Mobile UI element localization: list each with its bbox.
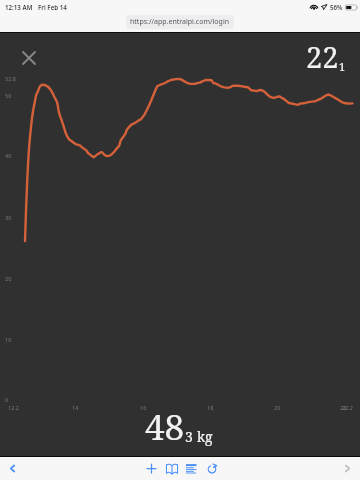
staticText: 18 bbox=[207, 404, 214, 411]
staticText: https://app.entralpi.com/login bbox=[130, 17, 230, 27]
staticText: 3 bbox=[185, 427, 193, 446]
staticText: 14 bbox=[72, 404, 79, 411]
staticText: 22 bbox=[340, 404, 347, 411]
button[interactable]: https://app.entralpi.com/login bbox=[126, 15, 234, 29]
staticText: 1 bbox=[339, 59, 346, 74]
button[interactable]: Close bbox=[18, 47, 40, 69]
staticText: 12.2 bbox=[8, 404, 19, 411]
button[interactable]: Forward bbox=[334, 457, 360, 480]
staticText: 16 bbox=[140, 404, 147, 411]
staticText: 52.8 bbox=[5, 75, 16, 82]
staticText: 50 bbox=[5, 92, 12, 99]
button[interactable]: New tab bbox=[144, 461, 159, 476]
staticText: 10 bbox=[5, 336, 12, 343]
staticText: 56% bbox=[330, 3, 343, 11]
button[interactable]: Back bbox=[0, 457, 24, 480]
staticText: 48 bbox=[145, 403, 185, 451]
staticText: 20 bbox=[274, 404, 281, 411]
staticText: kg bbox=[197, 427, 213, 446]
staticText: 12:13 AM bbox=[5, 3, 33, 11]
staticText: 40 bbox=[5, 152, 12, 159]
button[interactable]: Reload bbox=[204, 461, 219, 476]
staticText: 22.2 bbox=[342, 404, 353, 411]
button[interactable]: Bookmarks bbox=[164, 461, 179, 476]
staticText: Fri Feb 14 bbox=[38, 3, 67, 11]
staticText: 22 bbox=[306, 37, 339, 76]
staticText: 20 bbox=[5, 275, 12, 282]
staticText: 30 bbox=[5, 214, 12, 221]
button[interactable]: Reader view bbox=[184, 461, 199, 476]
staticText: 0 bbox=[5, 396, 9, 403]
